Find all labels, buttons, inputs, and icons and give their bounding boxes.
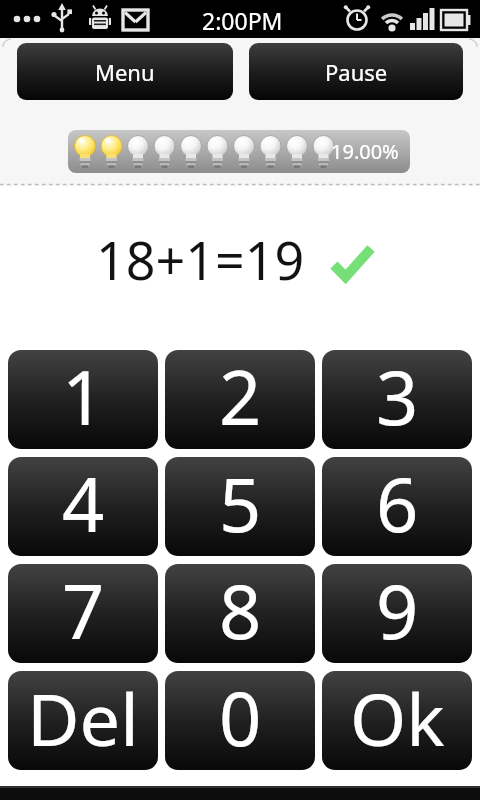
staticText: Ok: [350, 671, 445, 767]
staticText: Menu: [95, 57, 155, 87]
staticText: 18+1=19: [96, 224, 305, 295]
button[interactable]: 4: [8, 457, 158, 556]
button[interactable]: 5: [165, 457, 315, 556]
button[interactable]: 7: [8, 564, 158, 663]
staticText: 9: [376, 564, 419, 659]
button[interactable]: 3: [322, 350, 472, 449]
staticText: 19.00%: [331, 138, 399, 165]
staticText: 8: [219, 564, 262, 659]
button[interactable]: Ok: [322, 671, 472, 770]
staticText: 0: [219, 671, 262, 766]
staticText: 1: [62, 350, 105, 445]
button[interactable]: Pause: [249, 43, 463, 100]
staticText: 4: [62, 457, 105, 552]
staticText: 7: [62, 564, 105, 659]
button[interactable]: 9: [322, 564, 472, 663]
button[interactable]: 1: [8, 350, 158, 449]
staticText: 2:00PM: [202, 5, 283, 36]
staticText: 5: [219, 457, 262, 552]
button[interactable]: Del: [8, 671, 158, 770]
staticText: 2: [219, 350, 262, 445]
staticText: Pause: [325, 57, 388, 87]
button[interactable]: 2: [165, 350, 315, 449]
button[interactable]: Menu: [17, 43, 233, 100]
staticText: 6: [376, 457, 419, 552]
button[interactable]: 0: [165, 671, 315, 770]
button[interactable]: 8: [165, 564, 315, 663]
button[interactable]: 6: [322, 457, 472, 556]
staticText: 3: [376, 350, 419, 445]
staticText: Del: [27, 671, 139, 767]
